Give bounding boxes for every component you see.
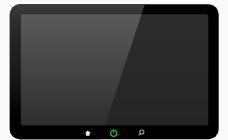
button[interactable]: Search: [133, 125, 150, 139]
button[interactable]: Power: [105, 125, 122, 139]
button[interactable]: Home: [79, 125, 96, 139]
